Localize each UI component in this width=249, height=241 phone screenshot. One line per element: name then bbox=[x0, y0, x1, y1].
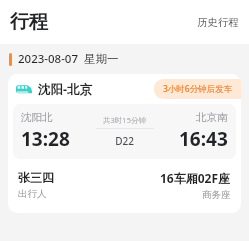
staticText: 16:43 bbox=[179, 126, 228, 152]
other: Train bbox=[16, 84, 32, 95]
staticText: 2023-08-07 星期一 bbox=[18, 51, 119, 67]
staticText: 出行人 bbox=[18, 188, 47, 200]
staticText: D22 bbox=[115, 134, 134, 148]
staticText: 共3时15分钟 bbox=[103, 115, 146, 125]
staticText: 16车厢02F座 bbox=[160, 170, 231, 186]
button[interactable]: Train bbox=[8, 74, 241, 213]
staticText: 3小时6分钟后发车 bbox=[163, 83, 233, 95]
staticText: 沈阳-北京 bbox=[38, 81, 93, 98]
staticText: 行程 bbox=[10, 10, 48, 34]
staticText: 张三四 bbox=[18, 170, 54, 185]
staticText: 历史行程 bbox=[197, 16, 239, 29]
staticText: 13:28 bbox=[21, 126, 70, 152]
staticText: 沈阳北 bbox=[21, 111, 53, 124]
button[interactable]: 历史行程 bbox=[187, 10, 249, 35]
staticText: 北京南 bbox=[196, 111, 228, 124]
staticText: 商务座 bbox=[202, 189, 231, 201]
